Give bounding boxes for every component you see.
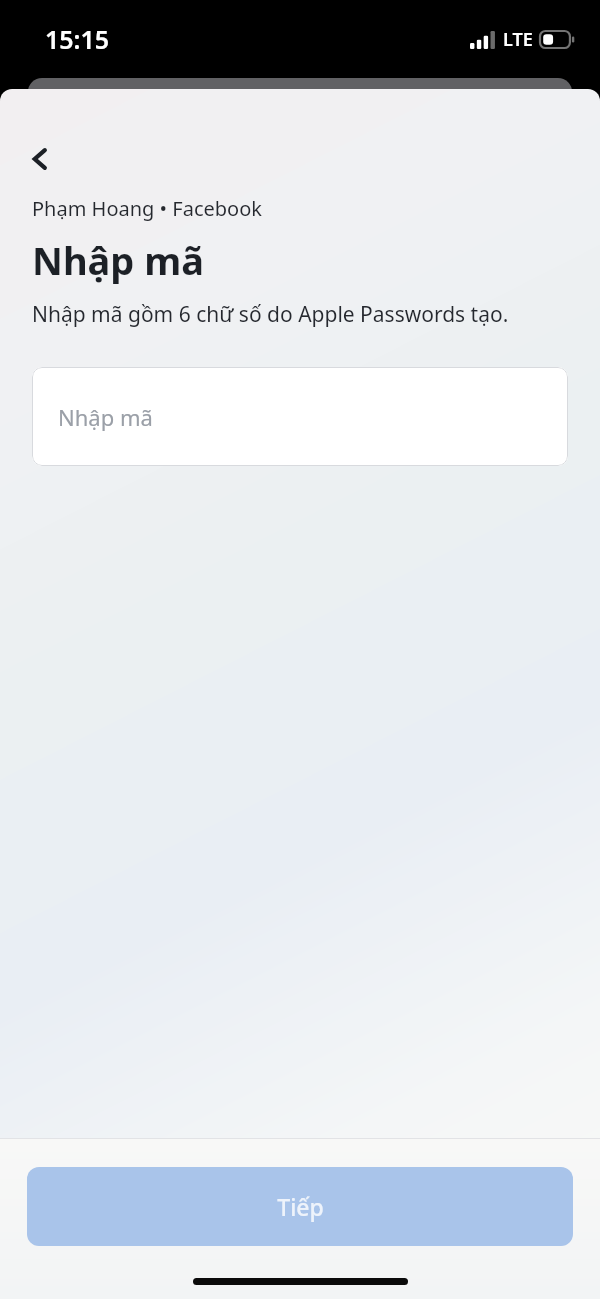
button[interactable]: Nhập mã xyxy=(32,367,568,466)
staticText: Nhập mã gồm 6 chữ số do Apple Passwords … xyxy=(32,300,509,329)
staticText: Nhập mã xyxy=(58,402,153,432)
staticText: Phạm Hoang • Facebook xyxy=(32,195,262,222)
button[interactable]: Tiếp xyxy=(27,1167,573,1246)
staticText: Tiếp xyxy=(277,1191,324,1222)
staticText: 15:15 xyxy=(45,22,110,56)
staticText: LTE xyxy=(503,27,533,52)
staticText: Nhập mã xyxy=(32,234,205,286)
button[interactable]: Quay lại xyxy=(16,135,64,183)
